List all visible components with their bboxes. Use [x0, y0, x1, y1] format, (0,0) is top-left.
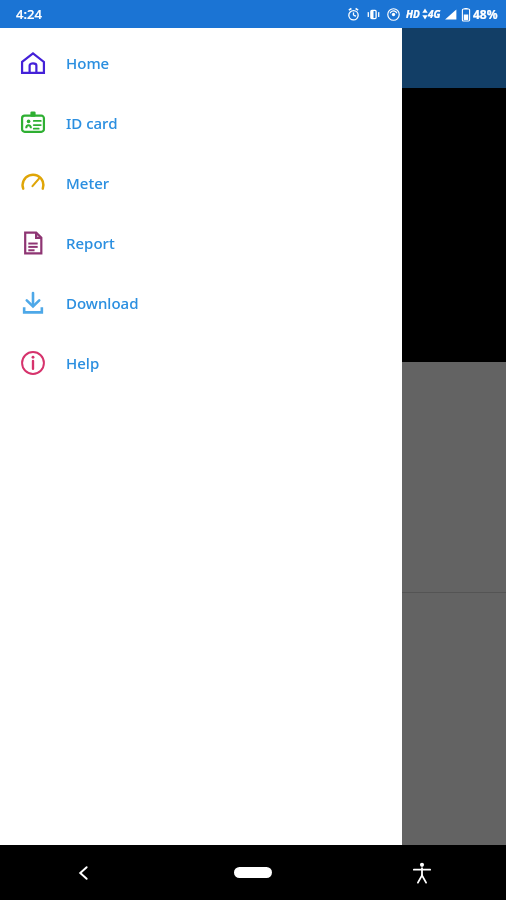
button[interactable]: Home [168, 845, 337, 900]
button[interactable]: Report [0, 213, 402, 273]
staticText: Home [66, 53, 110, 73]
button[interactable]: Home [0, 33, 402, 93]
button[interactable]: Back [0, 845, 168, 900]
button[interactable]: Accessibility [337, 845, 506, 900]
staticText: Help [66, 353, 100, 373]
staticText: 4G [428, 7, 441, 21]
staticText: 48% [473, 6, 498, 22]
staticText: ID card [66, 113, 118, 133]
button[interactable]: Help [0, 333, 402, 393]
staticText: Report [66, 233, 115, 253]
staticText: Download [66, 293, 139, 313]
staticText: Meter [66, 173, 110, 193]
button[interactable]: Meter [0, 153, 402, 213]
button[interactable]: Download [0, 273, 402, 333]
button[interactable]: RELOAD [8, 364, 128, 432]
staticText: HD [406, 7, 420, 21]
staticText: 4:24 [16, 5, 42, 23]
button[interactable]: ID card [0, 93, 402, 153]
